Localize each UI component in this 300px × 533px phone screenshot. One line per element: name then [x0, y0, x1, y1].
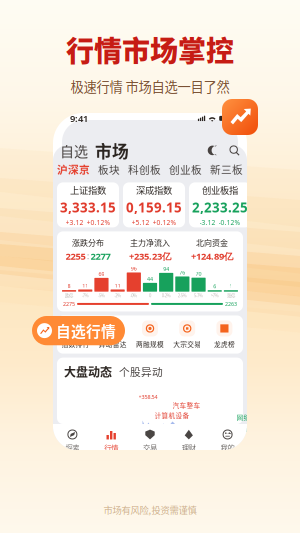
- staticText: 主力净流入: [130, 236, 170, 248]
- button[interactable]: 上证指数: [57, 182, 119, 227]
- button[interactable]: 创业板: [169, 161, 202, 180]
- staticText: 大宗交易: [173, 339, 201, 349]
- button[interactable]: 理财: [169, 429, 208, 453]
- staticText: >7%: [211, 292, 219, 298]
- staticText: 行情市场掌控: [66, 29, 234, 69]
- staticText: +0.12%: [86, 218, 110, 227]
- staticText: 我的: [221, 442, 235, 453]
- staticText: 69: [98, 270, 104, 277]
- staticText: 9:41: [70, 112, 88, 125]
- staticText: 0,159.15: [126, 198, 182, 216]
- staticText: 3,333.15: [60, 198, 116, 216]
- staticText: 深成指数: [136, 183, 172, 196]
- button[interactable]: Search: [229, 145, 240, 156]
- staticText: :: [87, 251, 89, 261]
- staticText: 异动雷达: [99, 339, 127, 349]
- staticText: 行情: [104, 442, 118, 453]
- button[interactable]: 美股: [281, 161, 300, 180]
- staticText: -3.12: [199, 218, 215, 227]
- button[interactable]: 个股异动: [119, 364, 163, 379]
- button[interactable]: 港股: [251, 161, 273, 180]
- staticText: 5-7%: [194, 292, 203, 298]
- staticText: 76: [179, 269, 185, 276]
- button[interactable]: 沪深京: [57, 161, 90, 180]
- button[interactable]: 板块: [98, 161, 120, 180]
- button[interactable]: 自选行情: [32, 316, 125, 345]
- staticText: 金融科技: [220, 423, 248, 433]
- staticText: 涨跌分布: [72, 236, 104, 248]
- staticText: 自选行情: [56, 320, 116, 341]
- staticText: 指数排行: [62, 339, 90, 349]
- button[interactable]: 探索: [53, 429, 92, 453]
- staticText: +124.89亿: [191, 250, 233, 262]
- staticText: 跌停: [65, 292, 73, 298]
- button[interactable]: 交易: [131, 429, 169, 453]
- staticText: 探索: [65, 442, 79, 453]
- staticText: 自选: [60, 140, 88, 161]
- staticText: 计算机设备: [154, 410, 189, 420]
- button[interactable]: 两融规模: [131, 320, 169, 349]
- button[interactable]: 大盘动态: [64, 363, 112, 380]
- button[interactable]: 我的: [208, 429, 247, 453]
- staticText: 涨停: [227, 292, 235, 298]
- staticText: 创业板指: [202, 183, 238, 196]
- staticText: 文化传媒: [186, 423, 214, 433]
- staticText: 汽车整车: [172, 400, 200, 410]
- staticText: 交易: [143, 442, 157, 453]
- staticText: 市场: [95, 138, 129, 162]
- staticText: 科创板: [128, 161, 161, 177]
- staticText: 极速行情 市场自选一目了然: [70, 76, 229, 96]
- staticText: 2255: [65, 250, 85, 262]
- staticText: 大盘动态: [64, 363, 112, 380]
- staticText: 70: [195, 270, 201, 277]
- staticText: 2277: [90, 250, 110, 262]
- staticText: 2263: [225, 300, 237, 307]
- staticText: 龙虎榜: [214, 339, 235, 349]
- staticText: 个股异动: [119, 364, 163, 379]
- staticText: +358.54: [138, 393, 157, 401]
- staticText: 创业板: [169, 161, 202, 177]
- staticText: 网络安全: [236, 412, 264, 422]
- staticText: +3.12: [65, 218, 83, 227]
- button[interactable]: 异动雷达: [94, 320, 131, 349]
- button[interactable]: 行情: [92, 429, 131, 453]
- staticText: 板块: [98, 161, 120, 177]
- staticText: -0%: [130, 292, 137, 298]
- staticText: 8: [68, 282, 71, 290]
- staticText: 96: [131, 265, 137, 272]
- button[interactable]: 自选: [60, 140, 88, 161]
- staticText: +0.12%: [152, 218, 176, 227]
- button[interactable]: 创业板指: [189, 182, 251, 227]
- button[interactable]: 科创板: [128, 161, 161, 180]
- button[interactable]: 新三板: [210, 161, 243, 180]
- staticText: 美股: [281, 161, 300, 177]
- staticText: 沪深京: [57, 161, 90, 177]
- staticText: 11: [115, 282, 121, 289]
- staticText: 市场有风险,投资需谨慎: [103, 503, 196, 516]
- button[interactable]: 深成指数: [123, 182, 185, 227]
- staticText: -5%: [98, 292, 105, 298]
- staticText: 94: [163, 265, 169, 272]
- button[interactable]: 市场: [95, 138, 129, 162]
- button[interactable]: 大宗交易: [169, 320, 206, 349]
- staticText: 1: [229, 283, 232, 290]
- staticText: -7%: [82, 292, 89, 298]
- button[interactable]: 指数排行: [57, 320, 94, 349]
- staticText: 11: [82, 282, 88, 289]
- staticText: 港股: [251, 161, 273, 177]
- button[interactable]: 龙虎榜: [206, 320, 243, 349]
- staticText: 0: [149, 292, 151, 298]
- button[interactable]: 科创50: [255, 182, 300, 227]
- staticText: +5.12: [131, 218, 149, 227]
- button[interactable]: Night mode: [207, 145, 218, 156]
- staticText: 44: [147, 275, 153, 282]
- staticText: 2-5%: [178, 292, 187, 298]
- staticText: -2%: [114, 292, 121, 298]
- staticText: 北向资金: [196, 236, 228, 248]
- staticText: 上证指数: [70, 183, 106, 196]
